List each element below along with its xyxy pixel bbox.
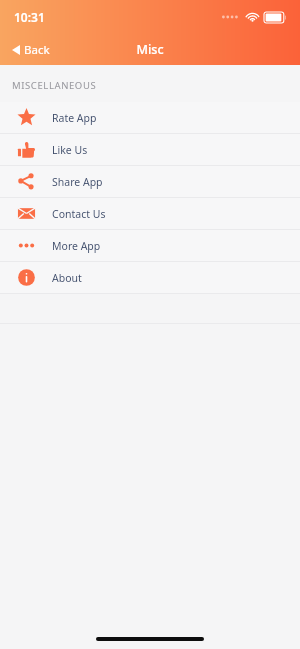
button[interactable]: Share App bbox=[0, 166, 300, 197]
staticText: Like Us bbox=[52, 143, 88, 157]
staticText: Contact Us bbox=[52, 207, 106, 221]
staticText: Share App bbox=[52, 175, 103, 189]
staticText: Misc bbox=[136, 41, 164, 58]
staticText: Rate App bbox=[52, 111, 97, 125]
button[interactable]: Rate App bbox=[0, 102, 300, 133]
button[interactable]: About bbox=[0, 262, 300, 293]
staticText: More App bbox=[52, 239, 101, 253]
button[interactable]: Back bbox=[12, 42, 50, 58]
button[interactable]: Like Us bbox=[0, 134, 300, 165]
button[interactable]: More App bbox=[0, 230, 300, 261]
staticText: About bbox=[52, 271, 82, 285]
staticText: MISCELLANEOUS bbox=[12, 79, 97, 92]
staticText: Back bbox=[24, 42, 50, 58]
button[interactable]: Contact Us bbox=[0, 198, 300, 229]
staticText: 10:31 bbox=[14, 9, 45, 25]
